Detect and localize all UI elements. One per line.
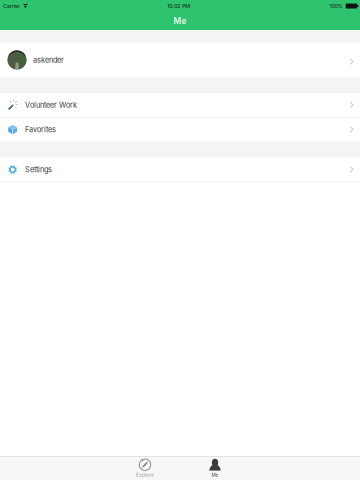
staticText: Carrier: [3, 3, 20, 9]
staticText: Settings: [25, 165, 52, 174]
staticText: 10:02 PM: [167, 3, 190, 9]
staticText: Volunteer Work: [25, 101, 77, 109]
button[interactable]: Volunteer Work: [0, 93, 360, 117]
staticText: Me: [173, 16, 186, 26]
button[interactable]: Explore: [118, 457, 172, 479]
staticText: 100%: [329, 3, 342, 9]
staticText: Explore: [136, 472, 154, 478]
button[interactable]: Favorites: [0, 118, 360, 142]
button[interactable]: askender: [0, 43, 360, 77]
staticText: askender: [33, 56, 64, 64]
button[interactable]: Settings: [0, 158, 360, 182]
button[interactable]: Me: [188, 457, 242, 479]
staticText: Favorites: [25, 125, 56, 134]
staticText: Me: [211, 472, 218, 478]
